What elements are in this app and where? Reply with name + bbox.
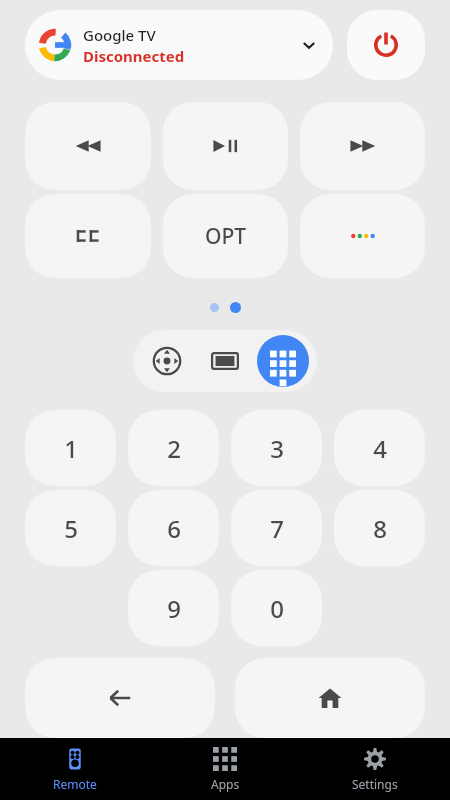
button[interactable]: Google TV [25, 10, 333, 80]
button[interactable]: 2 [128, 410, 219, 486]
button[interactable]: 8 [334, 490, 425, 566]
button[interactable]: Closed captions [25, 194, 151, 278]
button[interactable]: 7 [231, 490, 322, 566]
staticText: 8 [373, 512, 387, 545]
button[interactable]: Power [347, 10, 425, 80]
staticText: 2 [167, 432, 181, 465]
staticText: Apps [211, 776, 240, 792]
button[interactable]: Rewind [25, 102, 151, 190]
button[interactable]: 6 [128, 490, 219, 566]
staticText: Disconnected [83, 46, 185, 66]
staticText: 6 [167, 512, 181, 545]
button[interactable]: Fast forward [300, 102, 425, 190]
button[interactable]: Keypad mode [257, 335, 309, 387]
staticText: 3 [270, 432, 284, 465]
button[interactable]: Settings [300, 738, 450, 800]
button[interactable]: 5 [25, 490, 116, 566]
staticText: Settings [352, 776, 398, 792]
staticText: 0 [270, 592, 284, 625]
button[interactable]: 4 [334, 410, 425, 486]
staticText: Google TV [83, 25, 156, 45]
button[interactable]: 9 [128, 570, 219, 646]
staticText: 9 [167, 592, 181, 625]
button[interactable]: Back [25, 658, 215, 738]
button[interactable]: OPT [163, 194, 288, 278]
button[interactable]: Play pause [163, 102, 288, 190]
staticText: 1 [64, 432, 78, 465]
staticText: Remote [53, 776, 97, 792]
button[interactable]: 0 [231, 570, 322, 646]
button[interactable]: 1 [25, 410, 116, 486]
button[interactable]: Remote [0, 738, 150, 800]
button[interactable]: Apps [150, 738, 300, 800]
button[interactable]: Assistant [300, 194, 425, 278]
staticText: 5 [64, 512, 78, 545]
staticText: OPT [205, 222, 247, 251]
button[interactable]: Home [235, 658, 425, 738]
button[interactable]: 3 [231, 410, 322, 486]
staticText: 7 [270, 512, 284, 545]
button[interactable]: D-pad mode [141, 335, 193, 387]
staticText: 4 [373, 432, 387, 465]
button[interactable]: Touchpad mode [199, 335, 251, 387]
